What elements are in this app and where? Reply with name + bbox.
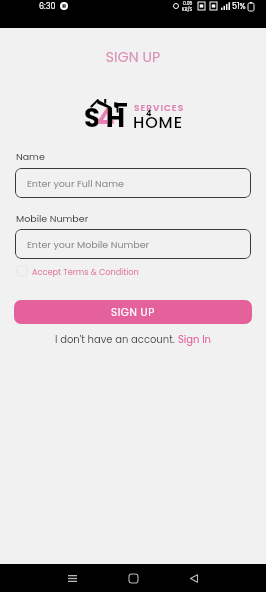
staticText: S	[84, 100, 100, 130]
button[interactable]: Home	[107, 564, 159, 592]
staticText: 4	[146, 108, 152, 119]
button[interactable]: SIGN UP	[14, 300, 252, 324]
staticText: Accept Terms & Condition	[32, 266, 139, 277]
button[interactable]: Back	[168, 564, 220, 592]
staticText: Name	[16, 150, 45, 163]
button[interactable]: Accept Terms & Condition	[14, 263, 139, 279]
button[interactable]: Sign In	[178, 332, 212, 346]
staticText: 51%	[232, 1, 246, 12]
staticText: Mobile Number	[16, 212, 89, 225]
staticText: Enter your Full Name	[27, 177, 124, 190]
staticText: SERVICES	[134, 102, 185, 115]
staticText: 4	[97, 100, 115, 130]
staticText: 6:30	[39, 1, 56, 12]
button[interactable]: Recent apps	[46, 564, 98, 592]
staticText: KB/S	[182, 6, 193, 12]
button[interactable]: Enter your Mobile Number	[15, 229, 251, 259]
staticText: SIGN UP	[111, 305, 155, 320]
staticText: H	[106, 100, 126, 130]
staticText: SIGN UP	[0, 47, 266, 67]
button[interactable]: Enter your Full Name	[15, 168, 251, 198]
staticText: Enter your Mobile Number	[27, 238, 150, 251]
staticText: 0.05	[183, 0, 193, 6]
staticText: HOME	[133, 111, 183, 133]
staticText: I don't have an account.	[55, 332, 178, 346]
